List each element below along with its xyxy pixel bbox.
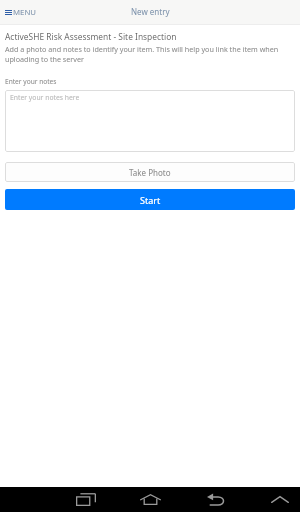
staticText: ActiveSHE Risk Assessment - Site Inspect… (5, 31, 177, 42)
button[interactable]: Recents (70, 487, 102, 512)
staticText: Enter your notes here (10, 93, 80, 102)
button[interactable]: Home (134, 487, 166, 512)
staticText: Add a photo and notes to identify your i… (5, 44, 286, 64)
staticText: Enter your notes (5, 77, 57, 86)
button[interactable]: Start (5, 189, 295, 210)
staticText: Take Photo (129, 167, 171, 178)
button[interactable]: Take Photo (5, 162, 295, 182)
button[interactable]: MENU (4, 6, 38, 19)
button[interactable]: Hide keyboard (264, 487, 296, 512)
button[interactable]: Back (200, 487, 232, 512)
staticText: MENU (13, 7, 37, 18)
staticText: Start (140, 194, 161, 206)
button[interactable]: Enter your notes here (5, 90, 295, 152)
staticText: New entry (131, 6, 170, 17)
